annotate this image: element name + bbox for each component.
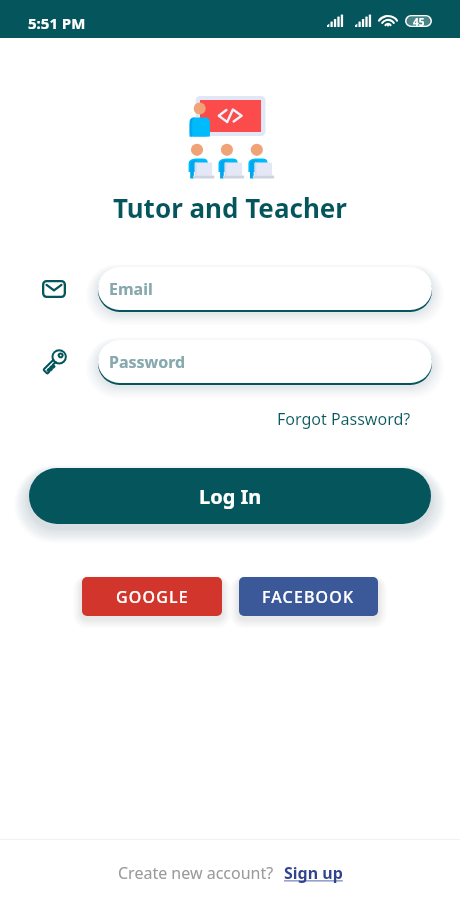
button[interactable]: Password [98, 340, 432, 383]
staticText: Tutor and Teacher [113, 190, 347, 225]
staticText: GOOGLE [116, 586, 189, 608]
button[interactable]: Forgot Password? [274, 405, 414, 433]
staticText: 45 [413, 15, 425, 27]
other: Password [37, 345, 71, 379]
staticText: Email [109, 278, 153, 300]
button[interactable]: Log In [29, 468, 431, 524]
staticText: Password [109, 351, 186, 373]
staticText: Sign up [284, 862, 343, 884]
button[interactable]: Email [98, 267, 432, 310]
staticText: Forgot Password? [277, 408, 411, 430]
staticText: FACEBOOK [262, 586, 355, 608]
staticText: 5:51 PM [28, 13, 86, 33]
button[interactable]: Sign up [284, 862, 343, 884]
other: Email [42, 280, 66, 298]
button[interactable]: GOOGLE [82, 577, 222, 616]
button[interactable]: FACEBOOK [239, 577, 378, 616]
staticText: Log In [199, 483, 262, 510]
staticText: Create new account? [118, 862, 274, 884]
